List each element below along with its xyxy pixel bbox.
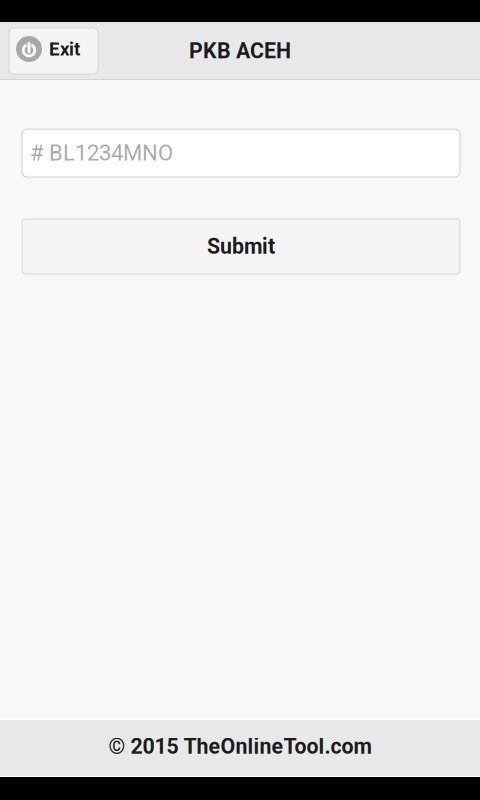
button[interactable]: # BL1234MNO <box>22 129 460 177</box>
button[interactable]: Exit <box>9 28 98 74</box>
button[interactable]: Submit <box>22 219 460 274</box>
staticText: © 2015 TheOnlineTool.com <box>108 734 371 759</box>
staticText: Exit <box>49 38 80 60</box>
staticText: PKB ACEH <box>189 38 291 63</box>
staticText: # BL1234MNO <box>30 140 173 166</box>
staticText: Submit <box>207 234 275 259</box>
